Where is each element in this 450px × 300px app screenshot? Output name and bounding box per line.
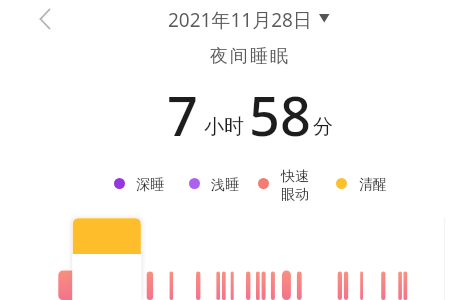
staticText: 清醒 <box>359 176 387 194</box>
staticText: 2021年11月28日 <box>168 7 312 33</box>
button[interactable]: 深睡 <box>114 178 142 196</box>
staticText: 7 <box>167 78 198 152</box>
button[interactable]: 浅睡 <box>189 178 217 196</box>
staticText: 58 <box>249 78 311 152</box>
staticText: 快速 眼动 <box>281 168 309 204</box>
staticText: 小时 <box>204 114 244 139</box>
button[interactable]: 快速 眼动 <box>258 178 286 214</box>
staticText: 浅睡 <box>211 176 239 194</box>
staticText: 夜间睡眠 <box>209 45 289 68</box>
button[interactable]: 清醒 <box>336 178 364 196</box>
button[interactable]: 2021年11月28日 <box>158 3 319 37</box>
staticText: 分 <box>313 114 333 139</box>
button[interactable]: Awake segment details <box>72 218 141 300</box>
staticText: 深睡 <box>136 176 164 194</box>
button[interactable]: Back <box>31 5 59 33</box>
button[interactable]: Choose date <box>313 8 335 29</box>
